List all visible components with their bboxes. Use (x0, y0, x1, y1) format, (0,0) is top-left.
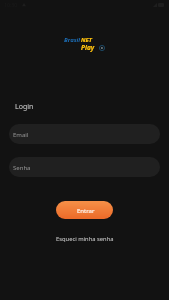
staticText: Brasil (64, 36, 81, 44)
other: Play (99, 45, 105, 51)
staticText: NET (81, 36, 92, 44)
button[interactable]: Esqueci minha senha (51, 232, 119, 246)
staticText: Entrar (77, 207, 95, 215)
button[interactable]: Senha (9, 157, 160, 177)
staticText: Senha (13, 164, 31, 172)
staticText: Play (81, 43, 95, 52)
button[interactable]: Entrar (56, 201, 113, 219)
staticText: Esqueci minha senha (56, 235, 114, 243)
staticText: Email (13, 131, 29, 139)
button[interactable]: Email (9, 124, 160, 144)
staticText: Login (15, 102, 34, 112)
